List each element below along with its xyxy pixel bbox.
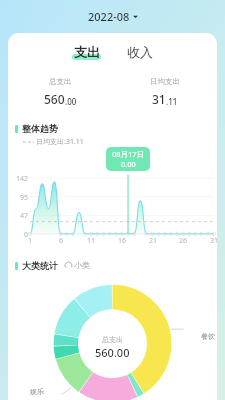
button[interactable]: 支出 <box>65 42 108 62</box>
staticText: 大类统计 <box>22 260 58 271</box>
staticText: 21 <box>146 236 160 246</box>
staticText: 26 <box>176 236 190 246</box>
button[interactable]: 收入 <box>120 42 160 62</box>
staticText: 支出 <box>74 44 100 60</box>
staticText: 31 <box>152 91 166 107</box>
staticText: 11 <box>84 236 98 246</box>
staticText: .11 <box>166 96 178 107</box>
staticText: 小类 <box>74 260 90 270</box>
staticText: 0.00 <box>121 159 136 169</box>
staticText: 总支出 <box>102 335 123 344</box>
button[interactable]: 小类 <box>63 258 92 272</box>
button[interactable]: 2022-08 <box>82 7 144 26</box>
staticText: 560.00 <box>95 345 130 360</box>
staticText: 1 <box>23 236 37 246</box>
staticText: 餐饮 <box>201 332 215 341</box>
staticText: 95 <box>8 193 28 203</box>
staticText: 31 <box>207 236 217 246</box>
staticText: 142 <box>8 174 28 184</box>
staticText: 6 <box>54 236 68 246</box>
staticText: 总支出 <box>49 77 72 86</box>
staticText: 收入 <box>127 44 153 60</box>
staticText: 0 <box>8 230 28 240</box>
staticText: 08月17日 <box>112 149 145 159</box>
staticText: 娱乐 <box>30 387 44 396</box>
staticText: 日均支出:31.11 <box>36 137 84 147</box>
staticText: .00 <box>65 96 77 107</box>
staticText: 47 <box>8 211 28 221</box>
staticText: 16 <box>115 236 129 246</box>
staticText: 整体趋势 <box>22 123 58 134</box>
staticText: 2022-08 <box>88 9 130 24</box>
staticText: 日均支出 <box>150 77 180 86</box>
staticText: 560 <box>44 91 65 107</box>
